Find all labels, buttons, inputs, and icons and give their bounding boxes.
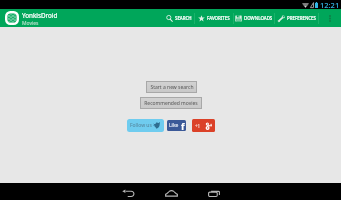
button[interactable]: Start a new search	[146, 81, 197, 93]
staticText: Follow us	[130, 122, 152, 129]
button[interactable]: FAVORITES	[195, 9, 233, 27]
staticText: Start a new search	[150, 84, 194, 91]
staticText: YonkisDroid	[22, 11, 58, 20]
staticText: Movies	[22, 20, 39, 27]
staticText: PREFERENCES	[287, 15, 316, 21]
button[interactable]: Back	[118, 183, 138, 200]
button[interactable]: DOWNLOADS	[234, 9, 274, 27]
staticText: DOWNLOADS	[244, 15, 273, 21]
staticText: f	[181, 120, 185, 131]
staticText: FAVORITES	[207, 15, 230, 21]
staticText: Recommended movies	[144, 100, 198, 107]
button[interactable]: Recommended movies	[140, 97, 202, 109]
button[interactable]: PREFERENCES	[275, 9, 318, 27]
staticText: Like	[169, 122, 179, 129]
staticText: +1	[195, 123, 201, 129]
button[interactable]: More options	[319, 9, 341, 27]
staticText: SEARCH	[175, 15, 192, 21]
button[interactable]: +1	[192, 119, 215, 132]
button[interactable]: Follow us	[127, 119, 164, 132]
button[interactable]: Like	[167, 120, 186, 131]
button[interactable]: Home	[161, 183, 181, 200]
button[interactable]: SEARCH	[164, 9, 194, 27]
staticText: 12:21	[320, 0, 340, 9]
button[interactable]: Recent apps	[204, 183, 224, 200]
